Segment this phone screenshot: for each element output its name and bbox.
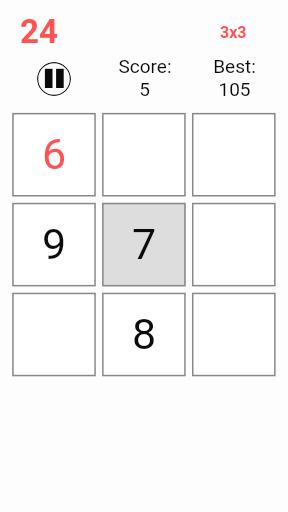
staticText: Best:	[213, 55, 256, 77]
button[interactable]: Best:	[199, 55, 269, 99]
staticText: 105	[218, 78, 251, 100]
staticText: Score:	[118, 55, 172, 77]
staticText: 6	[42, 129, 67, 179]
button[interactable]: Empty tile	[192, 113, 276, 197]
staticText: 5	[139, 78, 150, 100]
button[interactable]: Pause	[37, 62, 71, 96]
staticText: 7	[132, 219, 157, 269]
staticText: 9	[42, 219, 67, 269]
button[interactable]: 9	[12, 203, 96, 287]
button[interactable]: Empty tile	[102, 113, 186, 197]
staticText: 8	[132, 309, 157, 359]
staticText: 24	[20, 12, 58, 51]
button[interactable]: Empty tile	[192, 203, 276, 287]
button[interactable]: Empty tile	[192, 293, 276, 377]
button[interactable]: 7	[102, 203, 186, 287]
button[interactable]: Score:	[109, 55, 180, 99]
button[interactable]: 8	[102, 293, 186, 377]
button[interactable]: Empty tile	[12, 293, 96, 377]
button[interactable]: 6	[12, 113, 96, 197]
button[interactable]: 3x3	[220, 23, 247, 42]
